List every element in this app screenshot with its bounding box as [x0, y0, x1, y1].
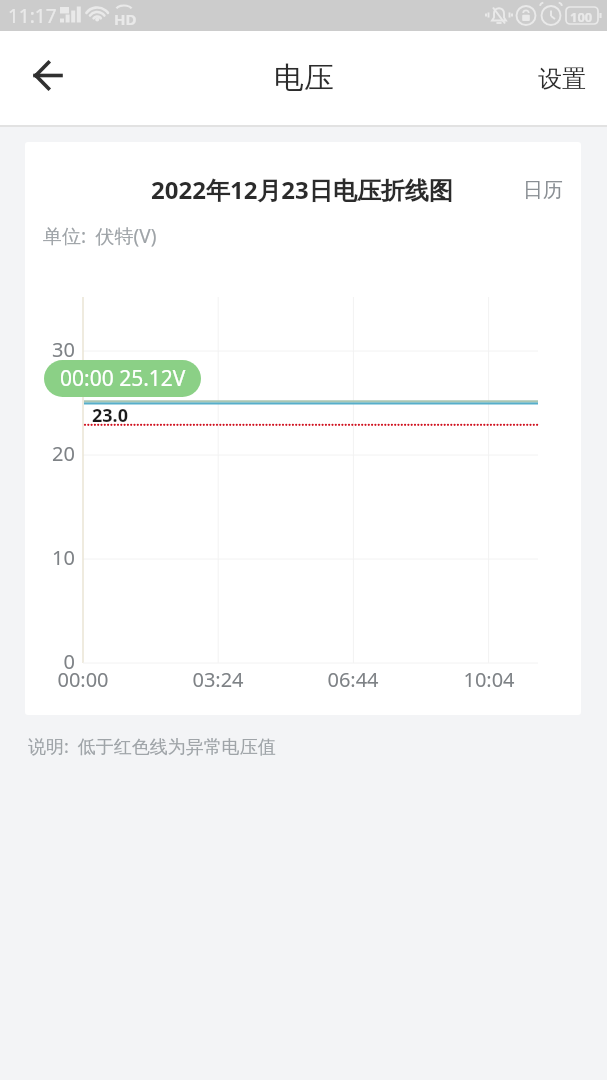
staticText: 2022年12月23日电压折线图 — [151, 173, 453, 206]
staticText: 0 — [25, 648, 75, 675]
staticText: 23.0 — [92, 403, 128, 428]
staticText: 11:17 — [8, 3, 57, 29]
staticText: 100 — [570, 8, 593, 26]
staticText: 30 — [25, 336, 75, 363]
staticText: HD — [114, 9, 137, 29]
staticText: 10 — [25, 544, 75, 571]
button[interactable]: Back — [22, 47, 78, 103]
staticText: 00:00 25.12V — [60, 364, 186, 393]
staticText: 日历 — [523, 178, 563, 203]
staticText: 说明: 低于红色线为异常电压值 — [28, 734, 276, 759]
staticText: 单位: 伏特(V) — [43, 223, 157, 249]
staticText: 电压 — [274, 59, 334, 97]
staticText: 20 — [25, 440, 75, 467]
button[interactable]: 设置 — [517, 48, 607, 110]
button[interactable]: 日历 — [505, 168, 581, 213]
staticText: 设置 — [538, 64, 586, 94]
staticText: 00:00 — [48, 666, 118, 693]
staticText: 06:44 — [318, 666, 388, 693]
staticText: 10:04 — [454, 666, 524, 693]
staticText: 03:24 — [183, 666, 253, 693]
